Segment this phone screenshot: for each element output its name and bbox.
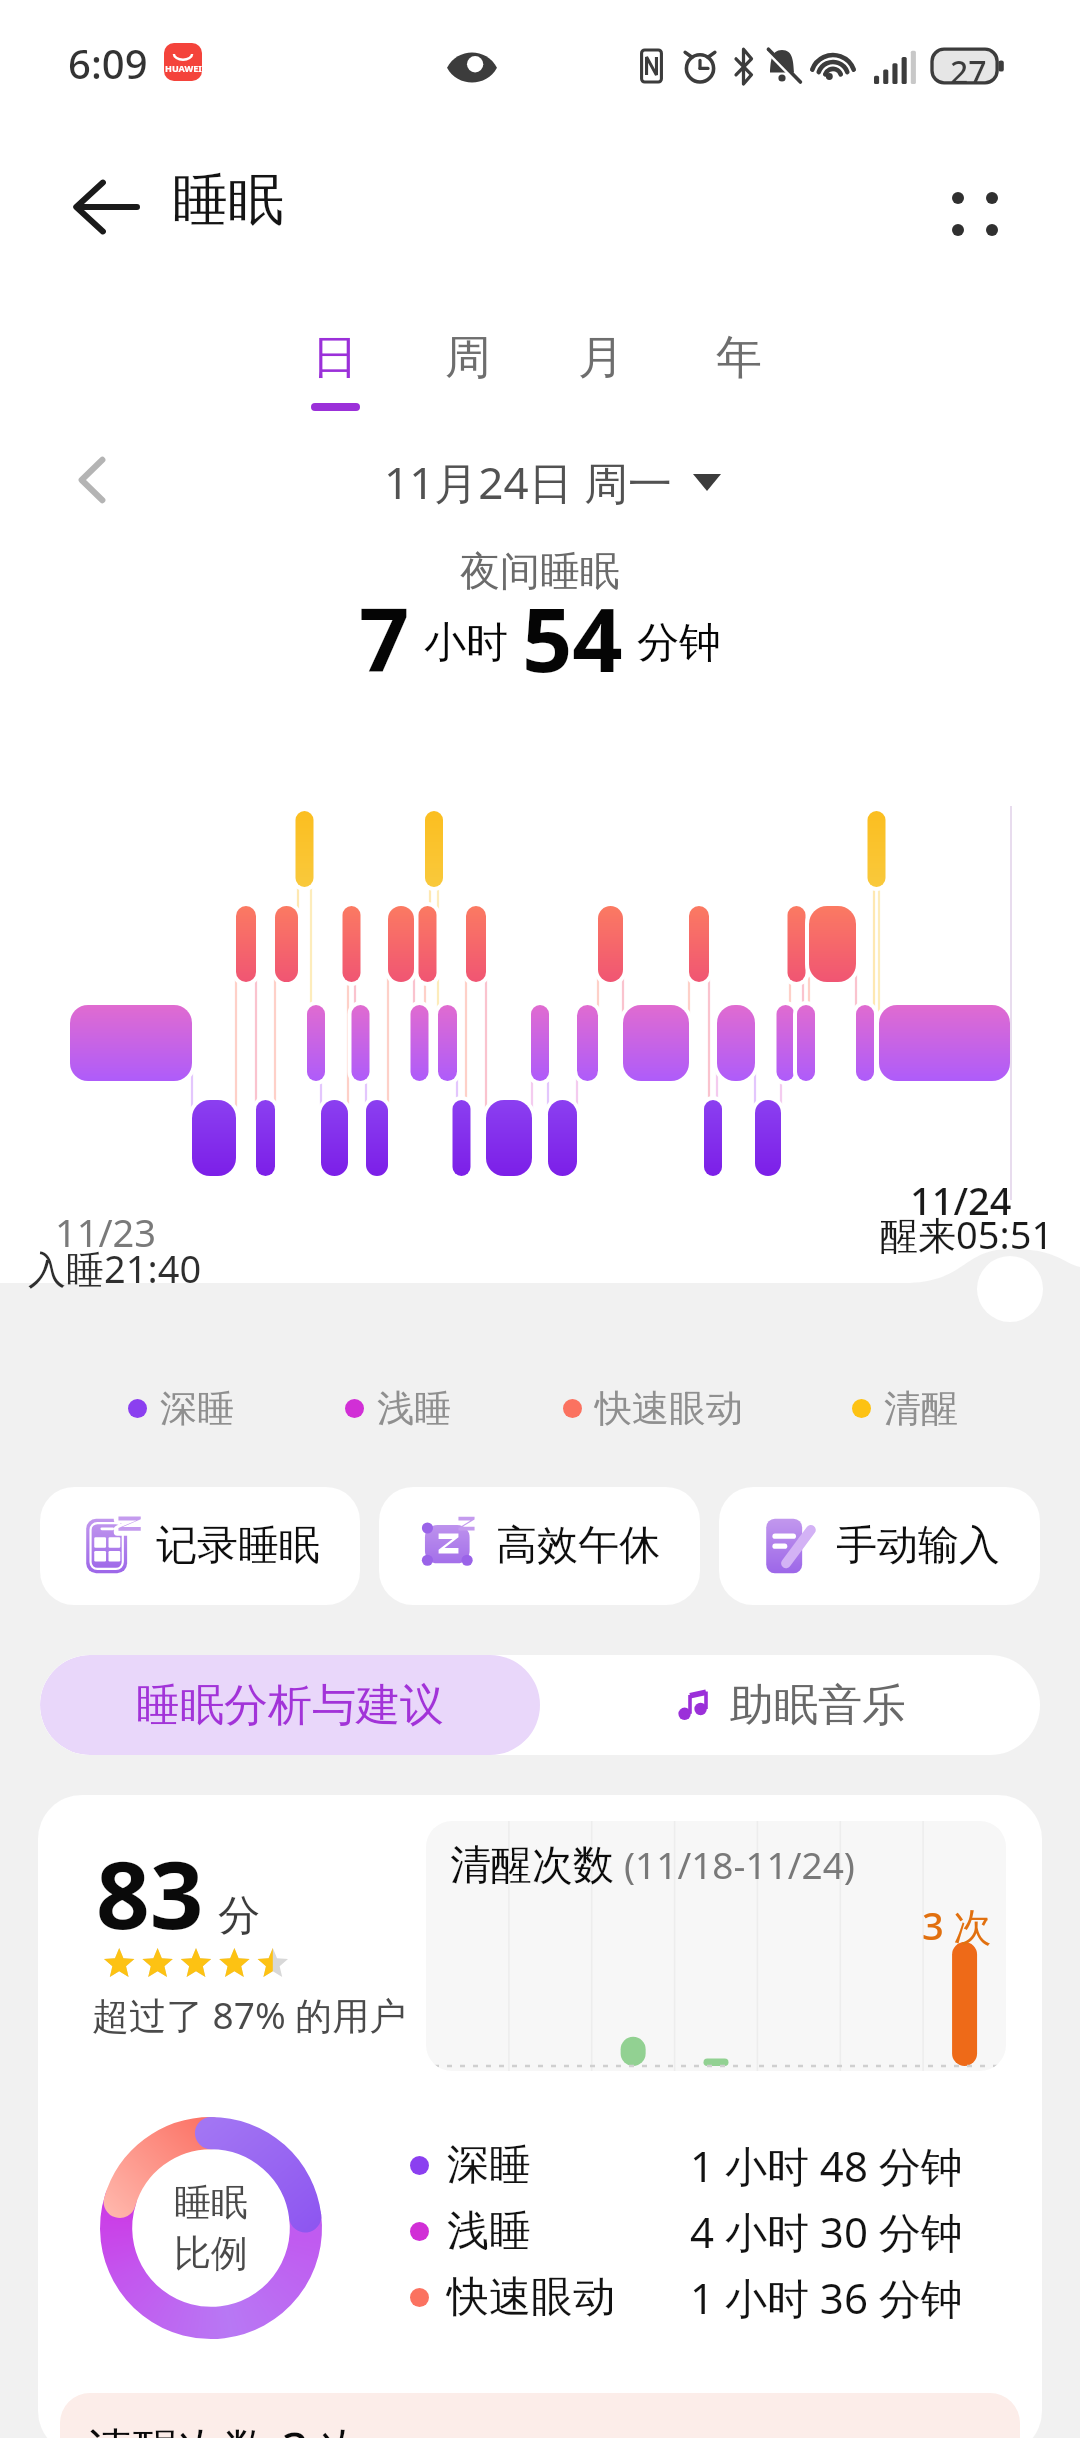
staticText: 高效午休 [496,1520,660,1572]
staticText: 比例 [174,2230,248,2277]
staticText: 年 [716,329,762,387]
staticText: 助眠音乐 [730,1678,906,1733]
staticText: 浅睡 [447,2205,690,2258]
staticText: 27 [950,50,987,94]
staticText: 11月24日 周一 [384,452,673,512]
button[interactable]: Back [58,162,154,252]
staticText: 清醒 [884,1385,958,1432]
staticText: 1 小时 48 分钟 [690,2137,963,2194]
button[interactable]: 11月24日 周一 [384,452,721,512]
button[interactable]: 年 [672,315,806,425]
staticText: 快速眼动 [447,2271,690,2324]
staticText: 清醒次数 3 次 [86,2417,367,2438]
staticText: 快速眼动 [595,1385,743,1432]
staticText: 6:09 [68,36,148,90]
button[interactable]: 月 [534,315,668,425]
staticText: 超过了 87% 的用户 [92,1989,407,2040]
staticText: 记录睡眠 [156,1520,320,1572]
staticText: 浅睡 [377,1385,451,1432]
button[interactable]: 周 [401,315,535,425]
staticText: 深睡 [447,2139,690,2192]
button[interactable]: 日 [268,315,402,425]
button[interactable]: Previous day [52,440,132,520]
staticText: 分钟 [637,617,721,670]
staticText: 入睡21:40 [28,1242,202,1294]
button[interactable]: 高效午休 [379,1487,700,1605]
staticText: (11/18-11/24) [624,1839,855,1889]
staticText: 日 [312,329,358,387]
button[interactable]: More options [930,159,1026,255]
staticText: 4 小时 30 分钟 [690,2203,963,2260]
button[interactable]: 助眠音乐 [540,1655,1040,1755]
staticText: 深睡 [160,1385,234,1432]
button[interactable]: 记录睡眠 [40,1487,360,1605]
staticText: 3 次 [922,1899,992,1951]
staticText: 周 [445,329,491,387]
button[interactable]: 睡眠分析与建议 [40,1655,540,1755]
staticText: 醒来05:51 [880,1208,1054,1260]
staticText: 11/23 [55,1206,157,1258]
staticText: HUAWEI [165,62,202,74]
staticText: 分 [218,1890,260,1943]
staticText: 7 [359,578,410,678]
staticText: 夜间睡眠 [0,546,1080,596]
staticText: 睡眠 [172,165,284,236]
staticText: 清醒次数 [450,1840,614,1892]
staticText: 11/24 [910,1174,1012,1226]
staticText: 小时 [424,617,508,670]
staticText: 睡眠分析与建议 [136,1678,444,1733]
staticText: 手动输入 [836,1520,1000,1572]
staticText: 83 [96,1829,204,1957]
button[interactable]: 手动输入 [719,1487,1040,1605]
staticText: 1 小时 36 分钟 [690,2269,963,2326]
staticText: 54 [522,578,623,678]
staticText: 睡眠 [174,2179,248,2226]
staticText: 月 [578,329,624,387]
